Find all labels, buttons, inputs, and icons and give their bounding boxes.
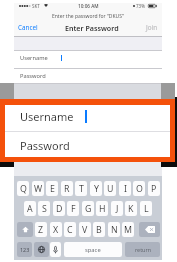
button[interactable]: space <box>64 242 122 257</box>
staticText: return <box>135 246 151 253</box>
staticText: R <box>64 183 70 195</box>
staticText: C <box>67 224 73 236</box>
button[interactable]: B <box>93 222 105 237</box>
staticText: T <box>79 183 84 195</box>
staticText: N <box>111 224 118 236</box>
button[interactable]: O <box>133 181 145 196</box>
button[interactable]: L <box>140 201 152 216</box>
staticText: Cancel <box>18 23 38 32</box>
button[interactable]: 123 <box>17 242 32 257</box>
staticText: SKT <box>32 3 40 9</box>
staticText: B <box>96 224 102 236</box>
button[interactable]: Cancel <box>17 23 39 32</box>
button[interactable]: W <box>32 181 44 196</box>
button[interactable]: Password <box>5 134 170 156</box>
staticText: S <box>42 203 47 215</box>
staticText: Enter Password <box>65 23 119 33</box>
staticText: Y <box>94 183 99 195</box>
staticText: G <box>85 203 92 215</box>
staticText: Q <box>20 183 27 195</box>
button[interactable]: C <box>64 222 76 237</box>
staticText: P <box>151 183 157 195</box>
staticText: Password <box>20 72 46 80</box>
button[interactable]: S <box>38 201 50 216</box>
button[interactable]: Username <box>5 105 170 127</box>
staticText: Username <box>20 109 74 124</box>
button[interactable]: G <box>82 201 94 216</box>
staticText: J <box>116 203 119 215</box>
staticText: I <box>124 183 127 195</box>
button[interactable]: T <box>75 181 87 196</box>
staticText: A <box>27 203 33 215</box>
staticText: F <box>71 203 76 215</box>
button[interactable]: return <box>125 242 160 257</box>
staticText: Username <box>20 54 48 62</box>
button[interactable]: Password <box>14 68 162 83</box>
staticText: 73% <box>136 3 145 9</box>
staticText: D <box>56 203 63 215</box>
staticText: space <box>85 246 101 254</box>
button[interactable]: Dictation <box>50 242 61 257</box>
staticText: O <box>136 183 143 195</box>
button[interactable]: H <box>96 201 108 216</box>
staticText: U <box>107 183 114 195</box>
staticText: Join <box>146 23 158 32</box>
button[interactable]: Delete <box>139 222 160 237</box>
button[interactable]: A <box>24 201 36 216</box>
button[interactable]: K <box>125 201 137 216</box>
staticText: L <box>144 203 149 215</box>
button[interactable]: P <box>148 181 160 196</box>
staticText: K <box>128 203 134 215</box>
button[interactable]: J <box>111 201 123 216</box>
staticText: V <box>82 224 88 236</box>
button[interactable]: Q <box>17 181 29 196</box>
button[interactable]: E <box>46 181 58 196</box>
button[interactable]: Username <box>14 49 162 67</box>
staticText: 10:06 AM <box>78 3 99 9</box>
button[interactable]: Z <box>35 222 47 237</box>
staticText: Password <box>20 138 70 153</box>
staticText: Z <box>38 224 44 236</box>
button[interactable]: I <box>119 181 131 196</box>
staticText: 123 <box>20 246 30 253</box>
staticText: W <box>34 183 43 195</box>
staticText: M <box>124 224 132 236</box>
button[interactable]: X <box>50 222 62 237</box>
button[interactable]: Shift <box>17 222 33 237</box>
staticText: E <box>50 183 55 195</box>
button[interactable]: M <box>122 222 134 237</box>
staticText: Enter the password for “DKUS” <box>52 13 124 20</box>
staticText: X <box>53 224 59 236</box>
button[interactable]: Join <box>145 23 159 32</box>
button[interactable]: Y <box>90 181 102 196</box>
button[interactable]: N <box>108 222 120 237</box>
button[interactable]: V <box>79 222 91 237</box>
button[interactable]: U <box>104 181 116 196</box>
staticText: H <box>99 203 106 215</box>
button[interactable]: F <box>67 201 79 216</box>
button[interactable]: Switch keyboard <box>34 242 49 257</box>
button[interactable]: R <box>61 181 73 196</box>
button[interactable]: D <box>53 201 65 216</box>
